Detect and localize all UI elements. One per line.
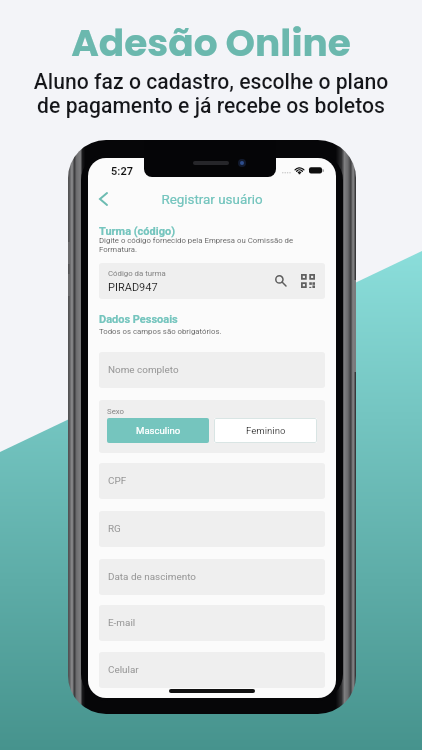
staticText: Aluno faz o cadastro, escolhe o plano de…	[0, 69, 422, 119]
staticText: Nome completo	[108, 364, 179, 376]
staticText: E-mail	[108, 617, 136, 629]
button[interactable]: E-mail	[99, 605, 325, 641]
button[interactable]: Data de nascimento	[99, 559, 325, 595]
staticText: Data de nascimento	[108, 571, 196, 583]
staticText: Todos os campos são obrigatórios.	[99, 327, 222, 336]
button[interactable]: Nome completo	[99, 352, 325, 388]
staticText: Dados Pessoais	[99, 313, 178, 326]
staticText: Adesão Online	[0, 17, 422, 70]
staticText: Sexo	[107, 407, 125, 416]
button[interactable]: Código da turma	[99, 263, 325, 299]
button[interactable]: Feminino	[214, 418, 317, 443]
staticText: 5:27	[111, 165, 134, 178]
staticText: Feminino	[246, 425, 286, 436]
staticText: Código da turma	[108, 269, 166, 278]
staticText: RG	[108, 523, 121, 535]
staticText: CPF	[108, 475, 127, 487]
staticText: Turma (código)	[99, 225, 175, 238]
button[interactable]: RG	[99, 511, 325, 547]
staticText: Digite o código fornecido pela Empresa o…	[99, 236, 325, 254]
staticText: Masculino	[136, 425, 181, 436]
staticText: PIRAD947	[108, 281, 158, 294]
staticText: Celular	[108, 664, 139, 676]
button[interactable]: CPF	[99, 463, 325, 499]
button[interactable]: Scan QR code	[299, 272, 317, 290]
button[interactable]: Search	[272, 272, 290, 290]
button[interactable]: Back	[91, 187, 115, 211]
button[interactable]: Masculino	[107, 418, 209, 443]
button[interactable]: Celular	[99, 652, 325, 688]
staticText: Registrar usuário	[88, 192, 336, 208]
